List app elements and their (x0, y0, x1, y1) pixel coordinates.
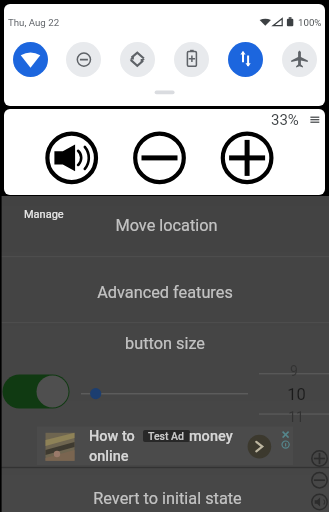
staticText: 100% (298, 17, 322, 28)
staticText: money (189, 428, 233, 445)
staticText: 33% (271, 111, 299, 129)
staticText: button size (125, 334, 205, 353)
staticText: Thu, Aug 22 (8, 17, 60, 28)
staticText: How to (89, 428, 135, 445)
button[interactable]: Airplane mode (282, 42, 317, 77)
staticText: Advanced features (97, 283, 233, 302)
staticText: 10 (287, 385, 306, 404)
staticText: online (89, 448, 129, 465)
button[interactable] (37, 426, 293, 466)
button[interactable]: Do not disturb (66, 42, 101, 77)
button[interactable]: Wi-Fi (13, 42, 48, 77)
button[interactable]: Auto rotate (120, 42, 155, 77)
button[interactable]: Revert to initial state (0, 468, 329, 512)
staticText: 9 (290, 363, 298, 379)
button[interactable]: Advanced features (0, 257, 329, 322)
staticText: Test Ad (148, 430, 185, 442)
button[interactable]: Mobile data (228, 42, 263, 77)
staticText: Revert to initial state (93, 489, 242, 508)
button[interactable]: button size (0, 323, 329, 365)
staticText: Move location (115, 216, 218, 235)
staticText: Manage (24, 208, 64, 221)
button[interactable]: Battery saver (174, 42, 209, 77)
button[interactable]: Move location (0, 196, 329, 256)
staticText: 11 (288, 409, 304, 425)
